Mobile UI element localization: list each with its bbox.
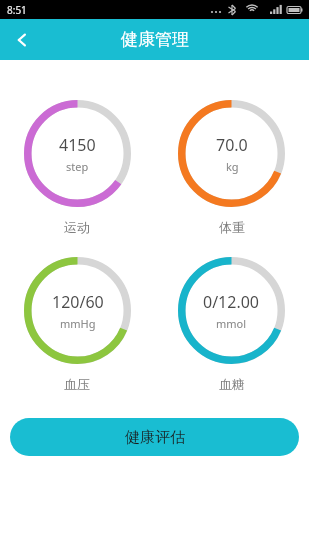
staticText: 120/60 [52,291,104,313]
staticText: 4150 [59,134,96,156]
staticText: 70.0 [216,134,248,156]
staticText: mmHg [60,316,96,331]
staticText: 健康管理 [121,29,189,50]
button[interactable]: 70.0 [154,100,309,235]
staticText: 运动 [64,219,90,235]
staticText: mmol [216,316,247,331]
button[interactable]: 4150 [0,100,154,235]
button[interactable]: 0/12.00 [154,257,309,392]
button[interactable]: Back [0,19,44,60]
staticText: 健康评估 [125,428,185,447]
staticText: 血压 [64,376,90,392]
staticText: 8:51 [7,3,27,17]
staticText: kg [226,159,239,174]
staticText: 体重 [219,219,245,235]
staticText: 血糖 [219,376,245,392]
button[interactable]: 健康评估 [10,418,299,456]
staticText: step [66,159,89,174]
staticText: 0/12.00 [203,291,260,313]
button[interactable]: 120/60 [0,257,154,392]
